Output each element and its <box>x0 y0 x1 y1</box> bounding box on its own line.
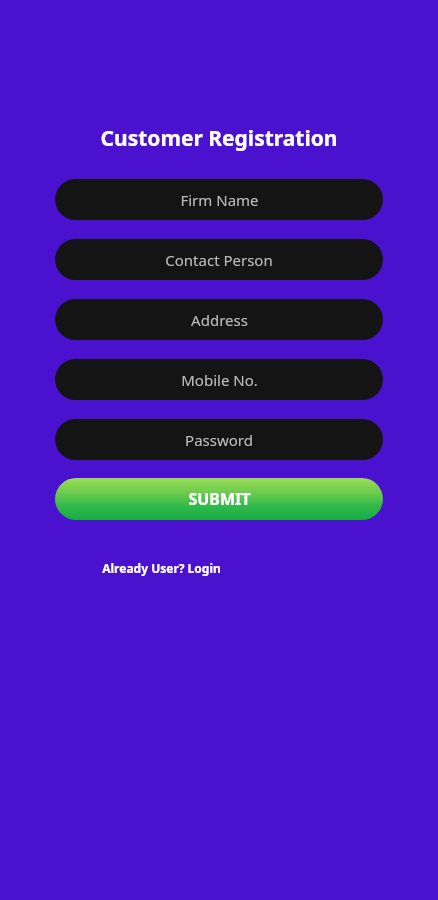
staticText: SUBMIT <box>188 488 251 510</box>
button[interactable]: Contact Person <box>55 239 383 280</box>
button[interactable]: SUBMIT <box>55 478 383 520</box>
button[interactable]: Address <box>55 299 383 340</box>
button[interactable]: Password <box>55 419 383 460</box>
staticText: Password <box>185 430 253 450</box>
staticText: Address <box>191 310 248 330</box>
button[interactable]: Firm Name <box>55 179 383 220</box>
staticText: Contact Person <box>165 250 273 270</box>
staticText: Mobile No. <box>181 370 258 390</box>
staticText: Firm Name <box>180 190 259 210</box>
staticText: Already User? Login <box>102 560 221 576</box>
button[interactable]: Mobile No. <box>55 359 383 400</box>
button[interactable]: Already User? Login <box>86 556 236 580</box>
staticText: Customer Registration <box>0 124 438 900</box>
